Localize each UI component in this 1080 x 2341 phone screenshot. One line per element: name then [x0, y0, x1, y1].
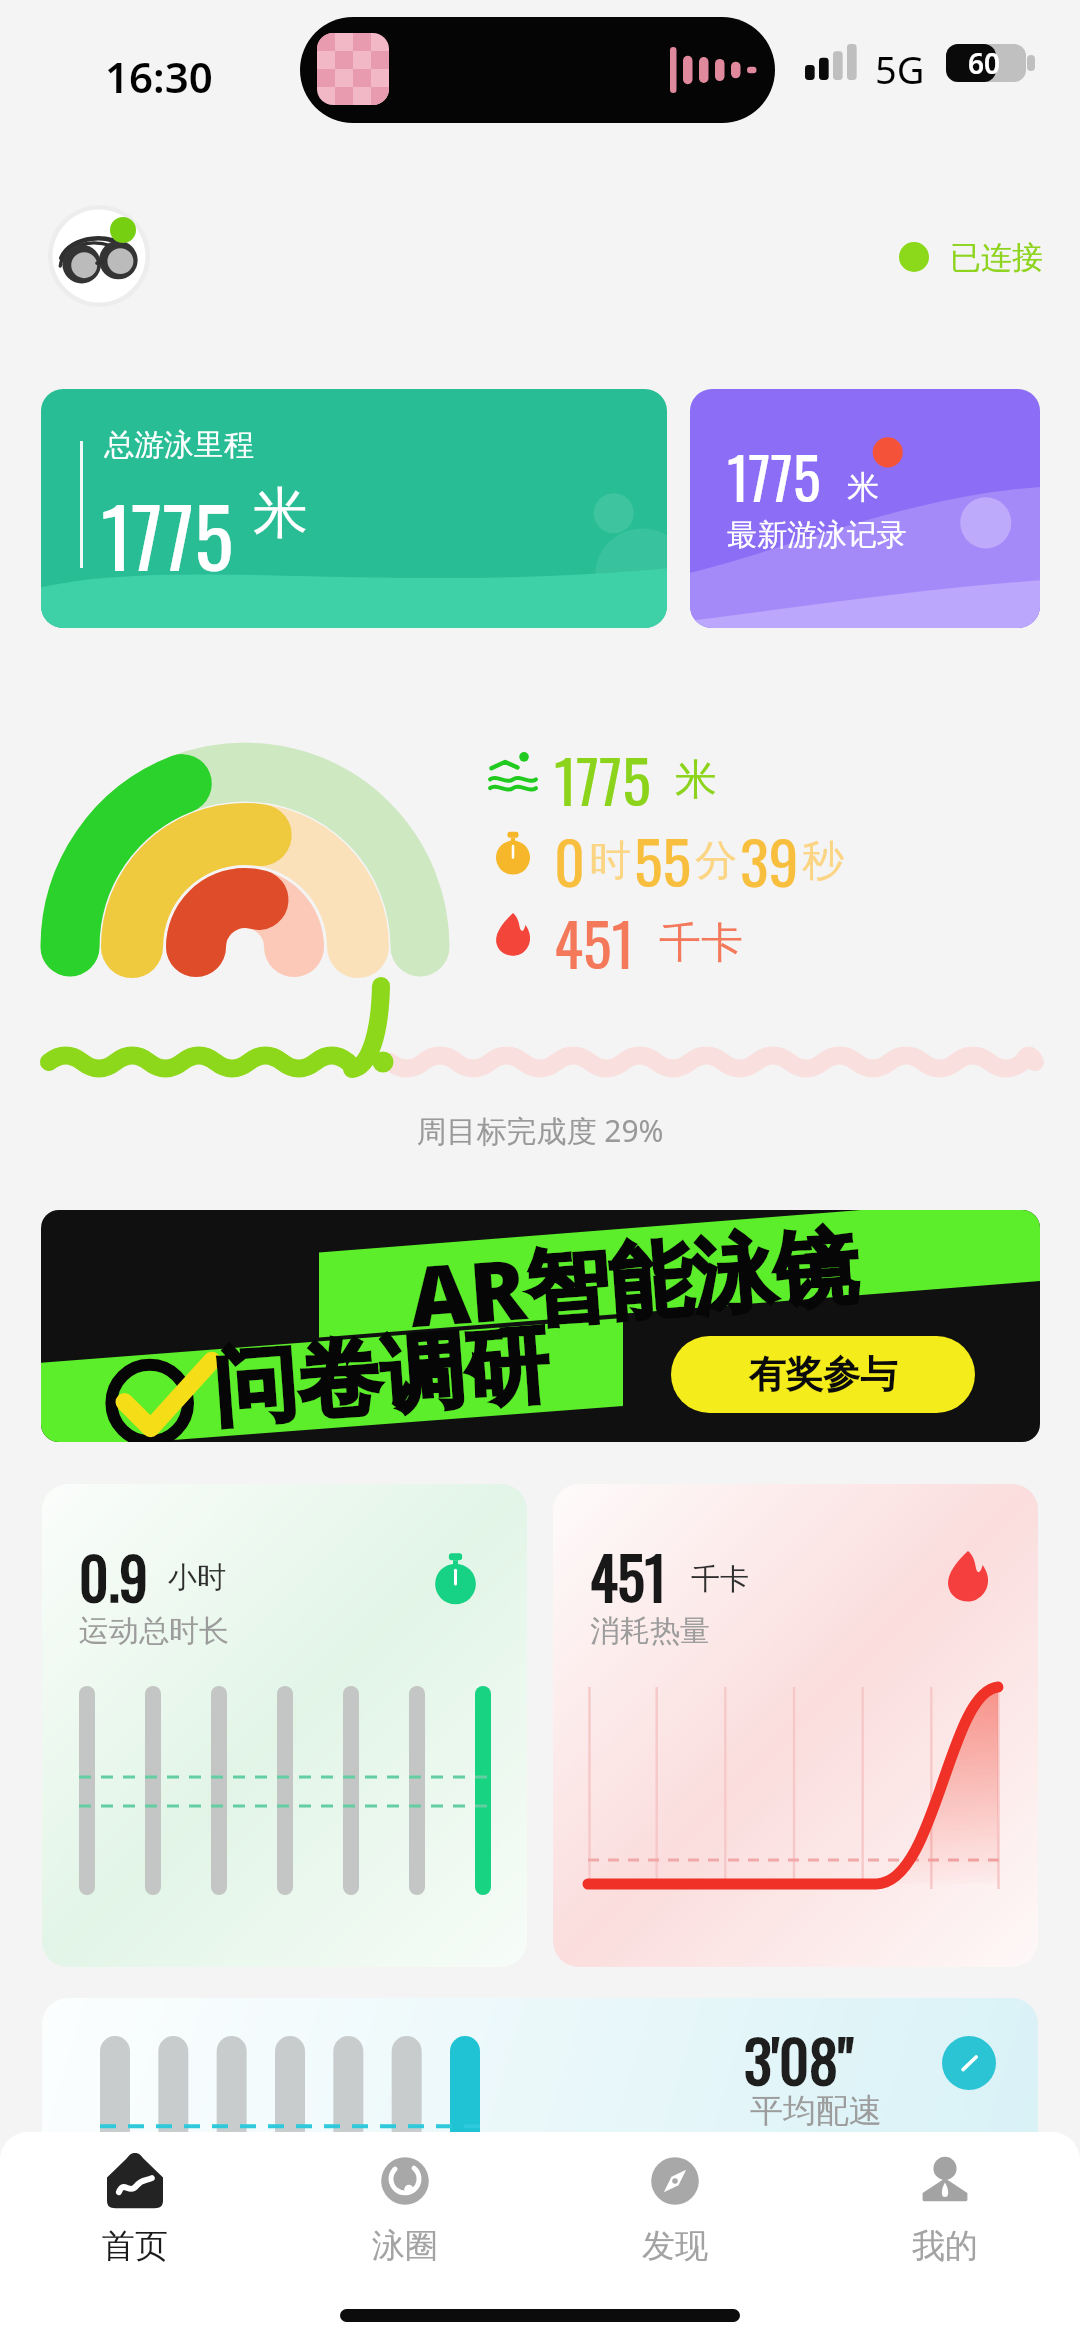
staticText: 有奖参与	[749, 1351, 897, 1398]
staticText: 问卷调研	[210, 1312, 552, 1442]
button[interactable]: Swim goggles device	[48, 205, 150, 307]
button[interactable]: 泳圈	[270, 2132, 540, 2307]
staticText: 最新游泳记录	[727, 516, 907, 554]
button[interactable]: 发现	[540, 2132, 810, 2307]
staticText: 39	[740, 815, 799, 895]
button[interactable]: 3'08"	[42, 1998, 1038, 2298]
staticText: 消耗热量	[590, 1612, 710, 1650]
button[interactable]: 1775	[690, 389, 1040, 628]
staticText: 秒	[802, 835, 844, 888]
staticText: 周目标完成度 29%	[0, 1110, 1080, 1151]
staticText: 3'08"	[744, 2016, 854, 2102]
button[interactable]: 总游泳里程	[41, 389, 667, 628]
staticText: 总游泳里程	[104, 426, 254, 464]
button[interactable]: 我的	[810, 2132, 1080, 2307]
staticText: 时	[589, 835, 631, 888]
staticText: 发现	[642, 2225, 708, 2267]
staticText: 千卡	[691, 1561, 749, 1598]
staticText: 首页	[102, 2225, 168, 2267]
staticText: 1775	[101, 473, 234, 595]
staticText: 0.9	[79, 1534, 148, 1618]
staticText: 5G	[875, 43, 925, 95]
staticText: 60	[968, 44, 1001, 82]
staticText: 米	[253, 479, 308, 548]
button[interactable]: 451	[553, 1484, 1038, 1967]
staticText: AR智能泳镜	[405, 1210, 862, 1351]
staticText: 米	[675, 754, 717, 807]
staticText: 运动总时长	[79, 1612, 229, 1650]
staticText: 小时	[168, 1559, 226, 1596]
button[interactable]: 有奖参与	[671, 1336, 975, 1413]
staticText: 千卡	[659, 917, 743, 970]
staticText: 451	[590, 1534, 667, 1618]
button[interactable]: AR智能泳镜	[41, 1210, 1040, 1442]
staticText: 已连接	[950, 238, 1043, 277]
staticText: 我的	[912, 2225, 978, 2267]
staticText: 1775	[554, 734, 651, 814]
staticText: 55	[634, 815, 692, 895]
staticText: 平均配速	[750, 2090, 882, 2132]
staticText: 16:30	[105, 48, 213, 105]
staticText: 泳圈	[372, 2225, 438, 2267]
staticText: 米	[847, 467, 879, 507]
staticText: 0	[554, 815, 586, 895]
staticText: 1775	[727, 433, 821, 519]
staticText: 分	[695, 835, 737, 888]
button[interactable]: 0.9	[42, 1484, 527, 1967]
staticText: 451	[554, 897, 635, 977]
button[interactable]: 首页	[0, 2132, 270, 2307]
